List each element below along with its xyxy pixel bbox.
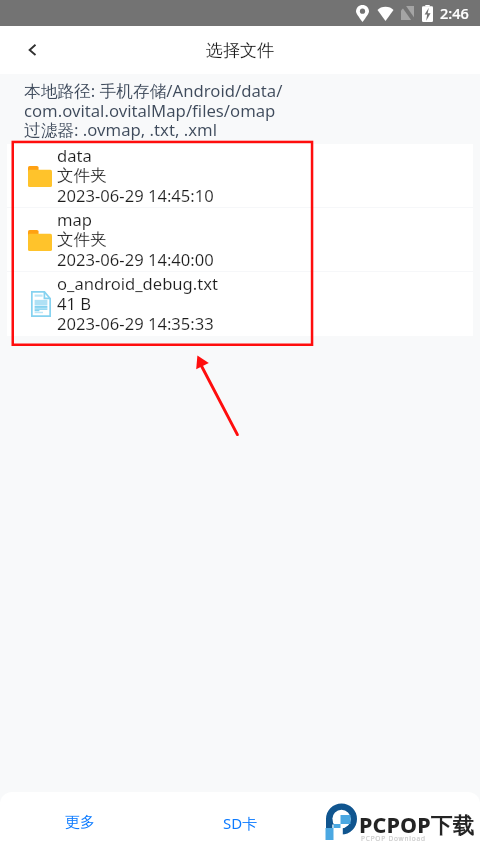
staticText: 本地路径: 手机存储/Android/data/ (24, 82, 283, 102)
button[interactable]: data 文件夹 2023-06-29 14:45:10 (7, 144, 473, 208)
staticText: PCPOP Download (361, 834, 426, 843)
staticText: 过滤器: .ovmap, .txt, .xml (24, 121, 217, 141)
button[interactable]: Back (8, 28, 52, 72)
button[interactable]: 更多 (0, 792, 160, 853)
staticText: o_android_debug.txt 41 B 2023-06-29 14:3… (57, 274, 219, 334)
staticText: 更多 (65, 813, 95, 832)
staticText: 2:46 (440, 3, 469, 23)
staticText: map 文件夹 2023-06-29 14:40:00 (57, 210, 214, 270)
button[interactable]: map 文件夹 2023-06-29 14:40:00 (7, 208, 473, 272)
button[interactable]: o_android_debug.txt 41 B 2023-06-29 14:3… (7, 272, 473, 336)
staticText: data 文件夹 2023-06-29 14:45:10 (57, 146, 214, 206)
staticText: com.ovital.ovitalMap/files/omap (24, 102, 276, 121)
staticText: SD卡 (223, 813, 258, 833)
button[interactable]: SD卡 (160, 792, 320, 853)
staticText: PCPOP下载 (359, 810, 475, 839)
staticText: 选择文件 (206, 40, 274, 61)
